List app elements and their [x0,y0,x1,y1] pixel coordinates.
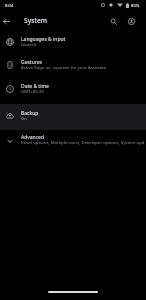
button[interactable]: Languages & input [0,31,146,54]
staticText: 85% [131,3,140,9]
staticText: Active Edge on, squeeze for your Assista… [21,64,107,70]
staticText: Reset options, Multiple users, Developer… [21,139,145,145]
staticText: Date & time [21,83,49,90]
staticText: Backup [21,110,39,117]
button[interactable]: Advanced [0,129,146,152]
staticText: System [24,16,48,25]
button[interactable]: Search [107,15,120,28]
button[interactable]: Account [125,15,138,28]
staticText: GMT+05:30 [21,88,44,94]
staticText: Gboard [21,41,37,47]
staticText: Languages & input [21,36,66,43]
button[interactable]: Backup [0,105,146,128]
staticText: On [21,115,28,121]
staticText: Gestures [21,59,42,66]
button[interactable]: Gestures [0,54,146,77]
staticText: Advanced [21,134,45,141]
staticText: 8:04 [5,3,14,9]
button[interactable]: Back [0,15,13,28]
button[interactable]: Date & time [0,78,146,101]
